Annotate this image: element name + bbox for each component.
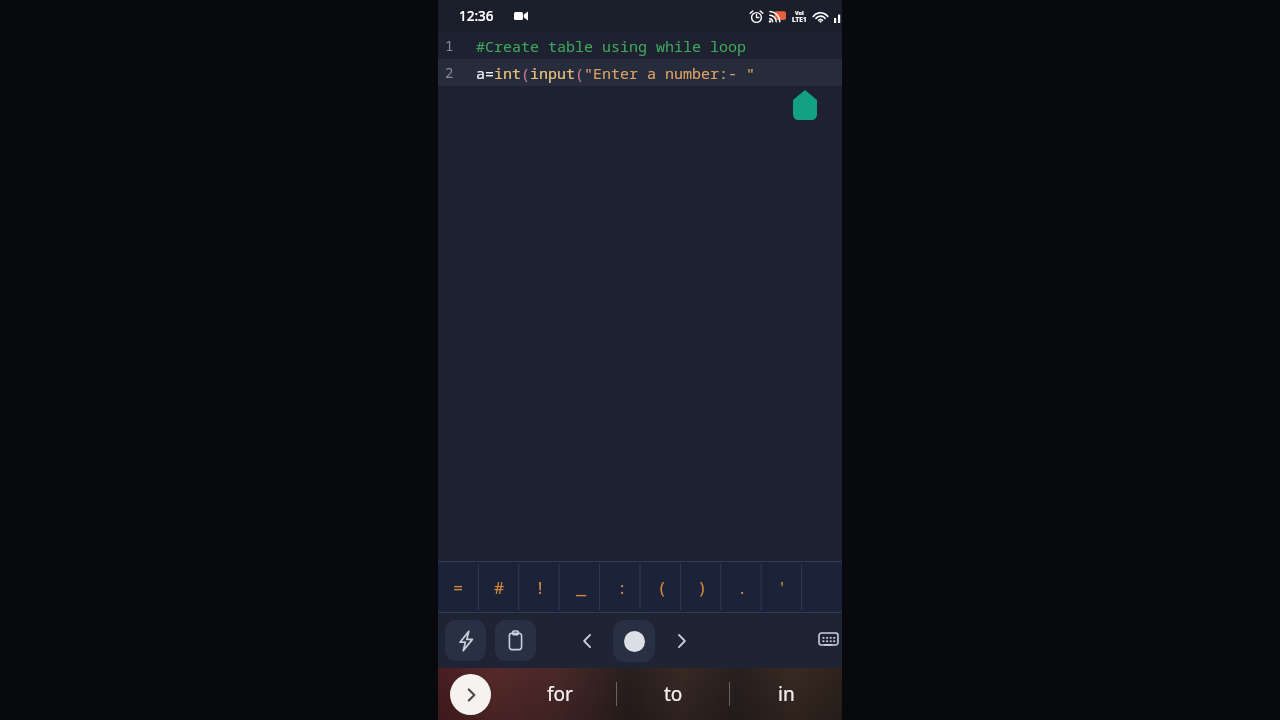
staticText: #	[494, 576, 505, 599]
staticText: (	[657, 576, 668, 599]
button[interactable]: .	[722, 561, 762, 613]
button[interactable]: '	[762, 561, 802, 613]
button[interactable]: in	[730, 668, 842, 720]
staticText: in	[778, 681, 795, 707]
staticText: for	[547, 681, 573, 707]
button[interactable]: Run	[445, 620, 486, 661]
staticText: !	[535, 576, 546, 599]
button[interactable]: =	[438, 561, 479, 613]
button[interactable]: Paste	[495, 620, 536, 661]
button[interactable]: More symbols	[802, 561, 842, 613]
staticText: :	[617, 576, 628, 599]
button[interactable]: to	[617, 668, 729, 720]
staticText: 2	[445, 63, 454, 82]
button[interactable]: :	[602, 561, 642, 613]
button[interactable]: #	[479, 561, 520, 613]
other: Text cursor handle	[793, 90, 817, 120]
button[interactable]: for	[504, 668, 616, 720]
staticText: a=int(input("Enter a number:- "	[476, 63, 756, 83]
staticText: 1	[445, 36, 454, 55]
button[interactable]: Keyboard	[808, 621, 848, 661]
button[interactable]: Expand suggestions	[450, 674, 491, 715]
staticText: =	[453, 576, 464, 599]
button[interactable]: Move cursor left	[571, 625, 603, 657]
button[interactable]: (	[642, 561, 682, 613]
button[interactable]: !	[520, 561, 561, 613]
staticText: _	[576, 576, 587, 599]
button[interactable]: )	[682, 561, 722, 613]
button[interactable]: Cursor pad	[613, 620, 655, 662]
staticText: to	[664, 681, 683, 707]
staticText: Vol	[795, 9, 804, 16]
staticText: LTE1	[792, 15, 807, 24]
button[interactable]: Move cursor right	[665, 625, 697, 657]
staticText: #Create table using while loop	[476, 36, 747, 56]
staticText: 12:36	[459, 7, 494, 25]
staticText: '	[777, 576, 788, 599]
staticText: )	[697, 576, 708, 599]
button[interactable]: _	[561, 561, 602, 613]
staticText: .	[737, 576, 748, 599]
